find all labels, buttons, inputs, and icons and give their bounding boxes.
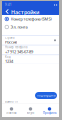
staticText: Профиль [43, 111, 56, 115]
staticText: Настройки [11, 9, 39, 16]
staticText: Код [5, 55, 11, 59]
button[interactable]: Профиль [40, 106, 59, 115]
staticText: Страна [5, 36, 14, 39]
button[interactable]: Эл. почта [2, 23, 59, 31]
staticText: Подтвердить [37, 94, 55, 97]
button[interactable]: Подтвердить [35, 92, 57, 99]
button[interactable]: Номер телефона [2, 46, 59, 54]
staticText: +7 912 345-67-89 [5, 49, 33, 54]
button[interactable]: Услуги [21, 106, 40, 115]
staticText: Важно (?) [5, 100, 18, 103]
staticText: 1234 [5, 59, 13, 64]
staticText: Услуги [26, 111, 34, 115]
staticText: 9:41 [5, 3, 12, 6]
button[interactable]: Код [2, 55, 59, 64]
button[interactable]: Главная [2, 106, 21, 115]
staticText: Номер телефона [5, 45, 27, 49]
button[interactable]: Страна [2, 36, 59, 45]
staticText: Россия [5, 39, 17, 45]
button[interactable]: Номер телефона (SMS) [2, 15, 59, 23]
staticText: Эл. почта [11, 24, 28, 30]
staticText: Номер телефона (SMS) [11, 16, 52, 22]
staticText: Главная [6, 111, 17, 115]
button[interactable]: Назад [4, 8, 11, 15]
